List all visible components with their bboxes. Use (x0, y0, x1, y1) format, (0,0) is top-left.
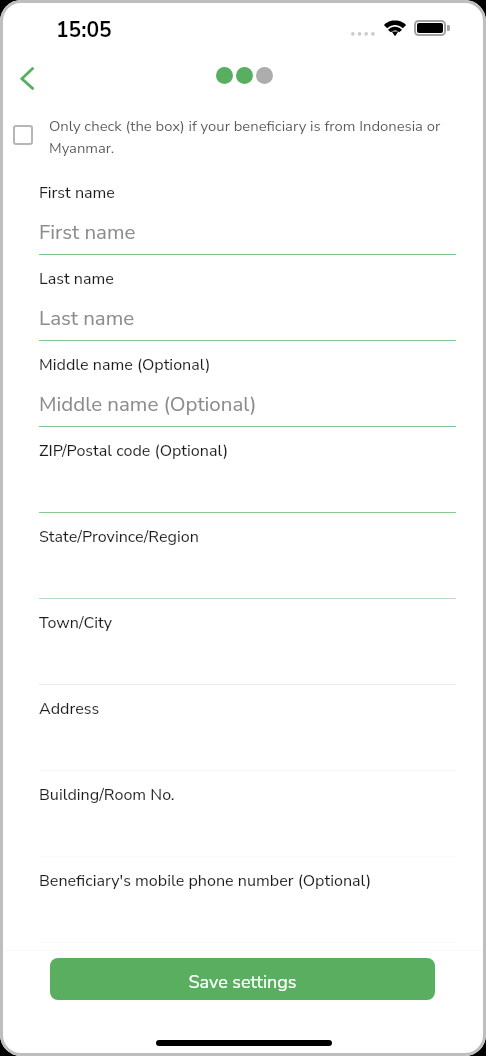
staticText: Only check (the box) if your beneficiary… (49, 116, 445, 158)
staticText: Last name (39, 268, 114, 290)
staticText: Save settings (188, 970, 297, 995)
staticText: ZIP/Postal code (Optional) (39, 440, 229, 462)
staticText: Building/Room No. (39, 784, 175, 806)
staticText: State/Province/Region (39, 526, 199, 548)
staticText: Last name (39, 304, 135, 332)
staticText: First name (39, 182, 115, 204)
staticText: Town/City (39, 612, 113, 634)
staticText: Address (39, 698, 100, 720)
button[interactable]: Back (7, 59, 47, 99)
staticText: 15:05 (56, 16, 112, 45)
staticText: Beneficiary's mobile phone number (Optio… (39, 870, 372, 892)
button[interactable]: Only check (the box) if your beneficiary… (0, 116, 460, 158)
button[interactable]: Save settings (50, 958, 435, 1000)
staticText: Middle name (Optional) (39, 354, 211, 376)
staticText: First name (39, 218, 136, 246)
staticText: Middle name (Optional) (39, 390, 257, 418)
